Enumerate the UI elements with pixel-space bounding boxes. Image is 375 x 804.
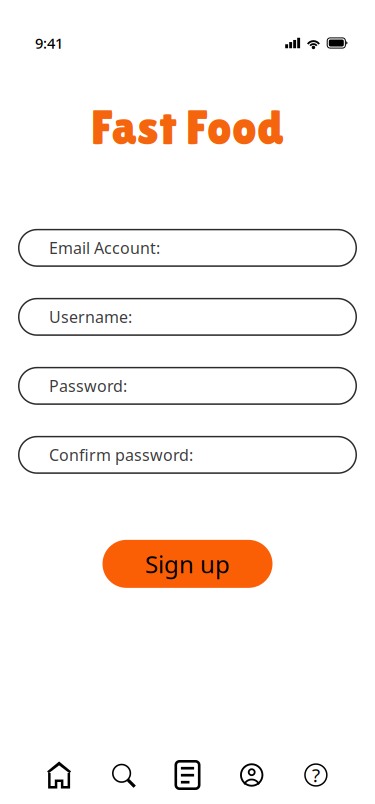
button[interactable]: Home (27, 761, 91, 788)
staticText: Password: (49, 375, 127, 396)
button[interactable]: Help (284, 763, 348, 787)
staticText: Confirm password: (49, 444, 193, 465)
staticText: Sign up (145, 548, 230, 580)
staticText: Username: (49, 306, 132, 327)
staticText: ? (312, 763, 320, 787)
button[interactable]: Orders (155, 760, 220, 790)
button[interactable]: Sign up (102, 540, 272, 588)
button[interactable]: Search (91, 763, 155, 787)
staticText: 9:41 (35, 33, 63, 53)
staticText: Fast Food (91, 100, 284, 155)
staticText: Email Account: (49, 237, 160, 258)
button[interactable]: Profile (220, 763, 284, 787)
